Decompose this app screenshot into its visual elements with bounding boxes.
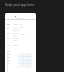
staticText: Grab your app here (5, 3, 35, 7)
